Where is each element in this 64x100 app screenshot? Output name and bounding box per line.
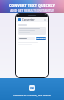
staticText: CONVERT (36, 37, 46, 40)
button[interactable] (18, 37, 35, 40)
staticText: Powered by a simple, fast engine (0, 93, 64, 96)
staticText: AND GET RESULTS INSTANTLY (3, 9, 61, 13)
button[interactable]: Menu (18, 18, 21, 21)
button[interactable] (18, 27, 46, 35)
button[interactable]: App icon (29, 85, 35, 91)
button[interactable]: CONVERT (36, 37, 46, 40)
staticText: Converter (22, 18, 35, 22)
staticText: CONVERT TEXT QUICKLY (3, 3, 61, 8)
